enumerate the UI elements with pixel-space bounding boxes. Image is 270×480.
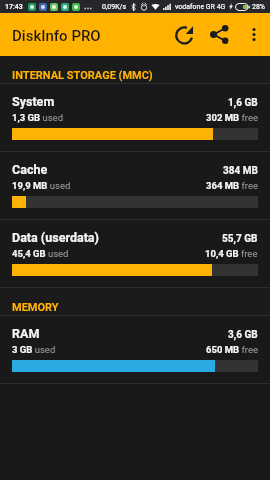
staticText: Data (userdata) — [12, 230, 99, 245]
staticText: 302 MB free — [206, 112, 258, 123]
staticText: 1,6 GB — [228, 97, 258, 109]
staticText: 10,4 GB free — [205, 248, 258, 259]
staticText: System — [12, 94, 55, 109]
staticText: 55,7 GB — [222, 233, 258, 245]
staticText: 650 MB free — [206, 344, 258, 355]
button[interactable]: System — [0, 84, 270, 152]
staticText: 17:43 — [5, 3, 23, 11]
staticText: Cache — [12, 162, 48, 177]
button[interactable]: RAM — [0, 316, 270, 384]
staticText: 364 MB free — [206, 180, 258, 191]
staticText: RAM — [12, 326, 40, 341]
staticText: 1,3 GB used — [12, 112, 64, 123]
button[interactable]: More options — [239, 13, 268, 56]
staticText: 3,6 GB — [228, 329, 258, 341]
staticText: INTERNAL STORAGE (MMC) — [12, 69, 153, 82]
staticText: 45,4 GB used — [12, 248, 69, 259]
button[interactable]: Data (userdata) — [0, 220, 270, 288]
staticText: vodafone GR 4G — [175, 3, 226, 11]
staticText: 28% — [252, 3, 265, 11]
staticText: 3 GB used — [12, 344, 56, 355]
button[interactable]: Refresh — [168, 13, 202, 56]
staticText: 19,9 MB used — [12, 180, 71, 191]
staticText: 384 MB — [223, 165, 258, 177]
button[interactable]: Cache — [0, 152, 270, 220]
button[interactable]: Share — [203, 13, 235, 56]
staticText: 0,09K/s — [102, 3, 127, 11]
staticText: MEMORY — [12, 301, 59, 314]
staticText: DiskInfo PRO — [12, 27, 101, 45]
